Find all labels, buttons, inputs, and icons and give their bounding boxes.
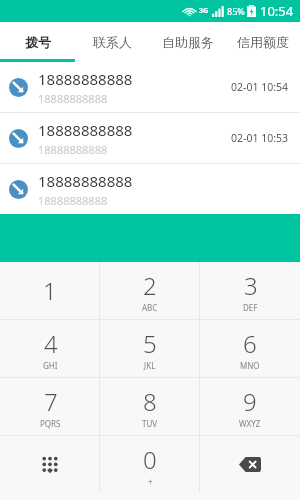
staticText: MNO bbox=[240, 360, 260, 371]
staticText: GHI bbox=[43, 360, 58, 371]
button[interactable]: Backspace bbox=[200, 436, 300, 493]
staticText: 0 bbox=[143, 443, 157, 476]
button[interactable]: 18888888888 bbox=[0, 113, 300, 163]
button[interactable]: 18888888888 bbox=[0, 62, 300, 112]
button[interactable]: 6 bbox=[200, 320, 300, 377]
staticText: + bbox=[148, 476, 153, 487]
staticText: TUV bbox=[142, 418, 158, 429]
staticText: 拨号 bbox=[25, 34, 51, 50]
staticText: 信用额度 bbox=[237, 34, 289, 50]
button[interactable]: 3 bbox=[200, 262, 300, 319]
staticText: PQRS bbox=[40, 418, 61, 429]
staticText: 18888888888 bbox=[38, 91, 108, 106]
button[interactable]: 5 bbox=[100, 320, 200, 377]
staticText: WXYZ bbox=[239, 418, 261, 429]
staticText: 10:54 bbox=[260, 2, 294, 20]
button[interactable]: 1 bbox=[0, 262, 100, 319]
button[interactable]: 信用额度 bbox=[225, 22, 300, 62]
staticText: 3G bbox=[199, 6, 209, 16]
staticText: 02-01 10:53 bbox=[231, 131, 288, 145]
staticText: 18888888888 bbox=[38, 69, 133, 89]
staticText: 85% bbox=[227, 5, 245, 17]
staticText: 8 bbox=[143, 385, 157, 418]
staticText: 1 bbox=[43, 274, 57, 307]
staticText: ABC bbox=[142, 302, 158, 313]
staticText: 6 bbox=[243, 327, 257, 360]
staticText: 5 bbox=[143, 327, 157, 360]
staticText: 18888888888 bbox=[38, 193, 108, 208]
button[interactable]: 4 bbox=[0, 320, 100, 377]
button[interactable]: 2 bbox=[100, 262, 200, 319]
button[interactable]: 7 bbox=[0, 378, 100, 435]
staticText: 18888888888 bbox=[38, 171, 133, 191]
button[interactable]: 自助服务 bbox=[150, 22, 225, 62]
button[interactable]: Hide keypad bbox=[0, 436, 100, 493]
button[interactable]: 9 bbox=[200, 378, 300, 435]
button[interactable]: 0 bbox=[100, 436, 200, 493]
button[interactable]: 18888888888 bbox=[0, 164, 300, 214]
button[interactable]: 拨号 bbox=[0, 22, 75, 62]
staticText: 自助服务 bbox=[162, 34, 214, 50]
staticText: DEF bbox=[243, 302, 258, 313]
button[interactable]: 联系人 bbox=[75, 22, 150, 62]
staticText: 18888888888 bbox=[38, 142, 108, 157]
staticText: 7 bbox=[44, 385, 58, 418]
staticText: 9 bbox=[243, 385, 257, 418]
staticText: 18888888888 bbox=[38, 120, 133, 140]
staticText: 2 bbox=[143, 269, 157, 302]
staticText: 联系人 bbox=[93, 34, 132, 50]
button[interactable]: 8 bbox=[100, 378, 200, 435]
staticText: 3 bbox=[244, 269, 258, 302]
staticText: 4 bbox=[44, 327, 58, 360]
staticText: 02-01 10:54 bbox=[231, 80, 288, 94]
staticText: JKL bbox=[144, 360, 156, 371]
